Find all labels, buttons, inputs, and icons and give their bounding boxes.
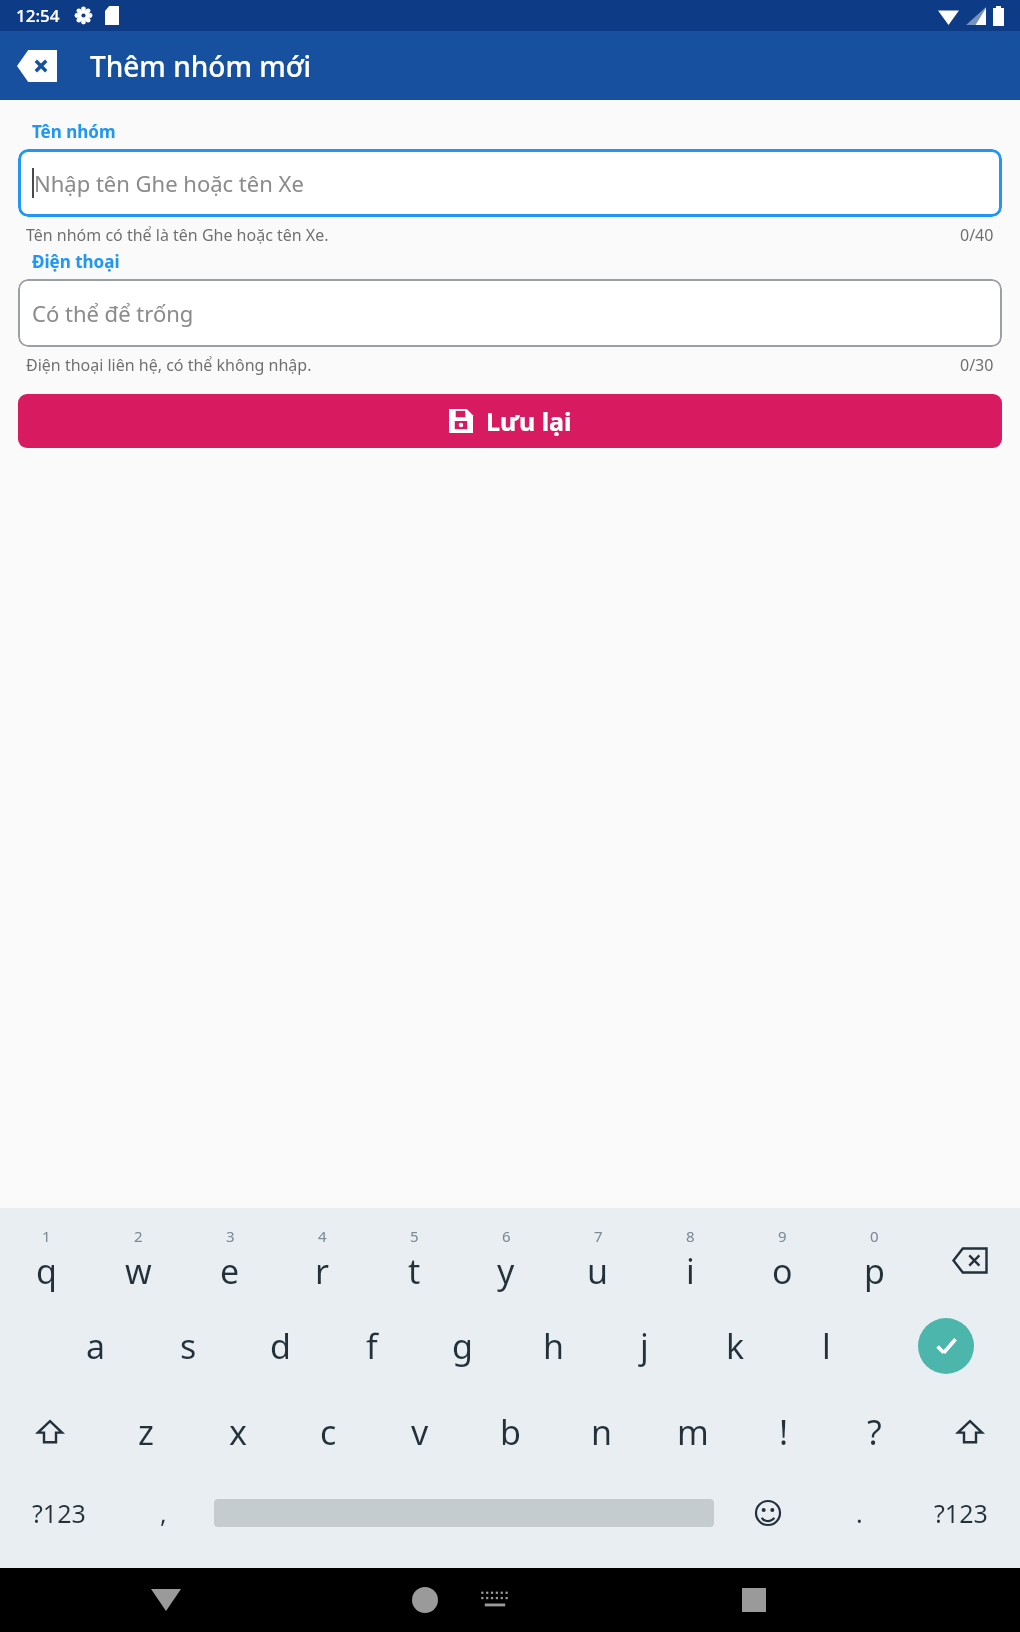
button[interactable]: Đóng bbox=[8, 37, 66, 95]
button[interactable]: z bbox=[100, 1394, 192, 1470]
button[interactable]: f bbox=[326, 1308, 417, 1384]
button[interactable]: j bbox=[599, 1308, 690, 1384]
button[interactable]: c bbox=[283, 1394, 374, 1470]
staticText: 1 bbox=[42, 1226, 51, 1246]
button[interactable]: k bbox=[690, 1308, 781, 1384]
staticText: p bbox=[864, 1248, 885, 1294]
staticText: w bbox=[125, 1248, 152, 1294]
button[interactable]: 2 bbox=[92, 1222, 184, 1298]
button[interactable]: ?123 bbox=[0, 1470, 118, 1556]
staticText: Tên nhóm có thể là tên Ghe hoặc tên Xe. bbox=[26, 224, 329, 246]
button[interactable]: Bàn phím bbox=[463, 1568, 527, 1632]
staticText: e bbox=[220, 1248, 240, 1294]
button[interactable]: Quay lại bbox=[134, 1568, 198, 1632]
button[interactable]: ?123 bbox=[902, 1470, 1020, 1556]
button[interactable]: 9 bbox=[736, 1222, 828, 1298]
button[interactable]: g bbox=[417, 1308, 508, 1384]
button[interactable]: v bbox=[374, 1394, 465, 1470]
staticText: 2 bbox=[134, 1226, 143, 1246]
button[interactable]: 3 bbox=[184, 1222, 276, 1298]
staticText: Nhập tên Ghe hoặc tên Xe bbox=[34, 168, 304, 198]
staticText: s bbox=[180, 1323, 197, 1369]
staticText: . bbox=[856, 1496, 863, 1530]
staticText: z bbox=[138, 1409, 154, 1455]
staticText: Thêm nhóm mới bbox=[90, 47, 312, 85]
staticText: g bbox=[452, 1323, 473, 1369]
staticText: k bbox=[726, 1323, 745, 1369]
staticText: 4 bbox=[318, 1226, 327, 1246]
staticText: f bbox=[366, 1323, 378, 1369]
staticText: l bbox=[822, 1323, 831, 1369]
staticText: , bbox=[160, 1496, 167, 1530]
staticText: v bbox=[411, 1409, 429, 1455]
button[interactable]: 1 bbox=[0, 1222, 92, 1298]
staticText: ?123 bbox=[32, 1496, 86, 1530]
staticText: r bbox=[315, 1248, 330, 1294]
staticText: 7 bbox=[594, 1226, 603, 1246]
button[interactable]: a bbox=[50, 1308, 142, 1384]
staticText: Điện thoại liên hệ, có thể không nhập. bbox=[26, 354, 312, 376]
button[interactable]: 8 bbox=[644, 1222, 736, 1298]
staticText: 5 bbox=[410, 1226, 419, 1246]
button[interactable]: d bbox=[234, 1308, 326, 1384]
staticText: 6 bbox=[502, 1226, 511, 1246]
button[interactable]: , bbox=[118, 1470, 208, 1556]
button[interactable]: Nhập tên Ghe hoặc tên Xe bbox=[18, 149, 1002, 217]
button[interactable]: Màn hình chính bbox=[393, 1568, 457, 1632]
staticText: 9 bbox=[778, 1226, 787, 1246]
button[interactable]: Shift bbox=[0, 1394, 100, 1470]
staticText: b bbox=[500, 1409, 521, 1455]
button[interactable]: b bbox=[465, 1394, 556, 1470]
button[interactable]: Tổng quan bbox=[722, 1568, 786, 1632]
staticText: y bbox=[497, 1248, 515, 1294]
button[interactable]: . bbox=[816, 1470, 902, 1556]
button[interactable]: h bbox=[508, 1308, 599, 1384]
staticText: 12:54 bbox=[16, 4, 60, 27]
staticText: h bbox=[543, 1323, 565, 1369]
staticText: ? bbox=[867, 1409, 882, 1455]
button[interactable]: n bbox=[556, 1394, 647, 1470]
staticText: d bbox=[270, 1323, 291, 1369]
staticText: ?123 bbox=[934, 1496, 988, 1530]
button[interactable]: x bbox=[192, 1394, 283, 1470]
staticText: Có thể để trống bbox=[32, 298, 194, 328]
button[interactable]: Xong bbox=[872, 1308, 1020, 1384]
staticText: 0/30 bbox=[960, 354, 994, 376]
staticText: q bbox=[36, 1248, 57, 1294]
staticText: o bbox=[772, 1248, 793, 1294]
button[interactable]: 6 bbox=[460, 1222, 552, 1298]
button[interactable]: ! bbox=[738, 1394, 829, 1470]
staticText: c bbox=[320, 1409, 337, 1455]
staticText: j bbox=[640, 1323, 649, 1369]
staticText: n bbox=[591, 1409, 613, 1455]
other: Dấu cách bbox=[214, 1496, 714, 1530]
staticText: x bbox=[229, 1409, 247, 1455]
staticText: Lưu lại bbox=[486, 404, 572, 438]
staticText: i bbox=[686, 1248, 695, 1294]
button[interactable]: 0 bbox=[828, 1222, 920, 1298]
button[interactable]: Lưu lại bbox=[18, 394, 1002, 448]
button[interactable]: 7 bbox=[552, 1222, 644, 1298]
button[interactable]: Xóa bbox=[920, 1222, 1020, 1298]
button[interactable]: Biểu tượng cảm xúc bbox=[720, 1470, 816, 1556]
staticText: 8 bbox=[686, 1226, 695, 1246]
button[interactable]: Có thể để trống bbox=[18, 279, 1002, 347]
button[interactable]: m bbox=[647, 1394, 738, 1470]
staticText: u bbox=[587, 1248, 609, 1294]
button[interactable]: Shift bbox=[920, 1394, 1020, 1470]
button[interactable]: s bbox=[142, 1308, 234, 1384]
staticText: ! bbox=[779, 1409, 789, 1455]
staticText: 3 bbox=[226, 1226, 235, 1246]
button[interactable]: 5 bbox=[368, 1222, 460, 1298]
staticText: 0/40 bbox=[960, 224, 994, 246]
button[interactable]: ? bbox=[829, 1394, 920, 1470]
staticText: t bbox=[408, 1248, 421, 1294]
staticText: a bbox=[86, 1323, 106, 1369]
staticText: Tên nhóm bbox=[32, 120, 116, 143]
button[interactable]: 4 bbox=[276, 1222, 368, 1298]
staticText: 0 bbox=[870, 1226, 879, 1246]
staticText: Điện thoại bbox=[32, 250, 120, 273]
button[interactable]: l bbox=[781, 1308, 872, 1384]
staticText: m bbox=[677, 1409, 709, 1455]
